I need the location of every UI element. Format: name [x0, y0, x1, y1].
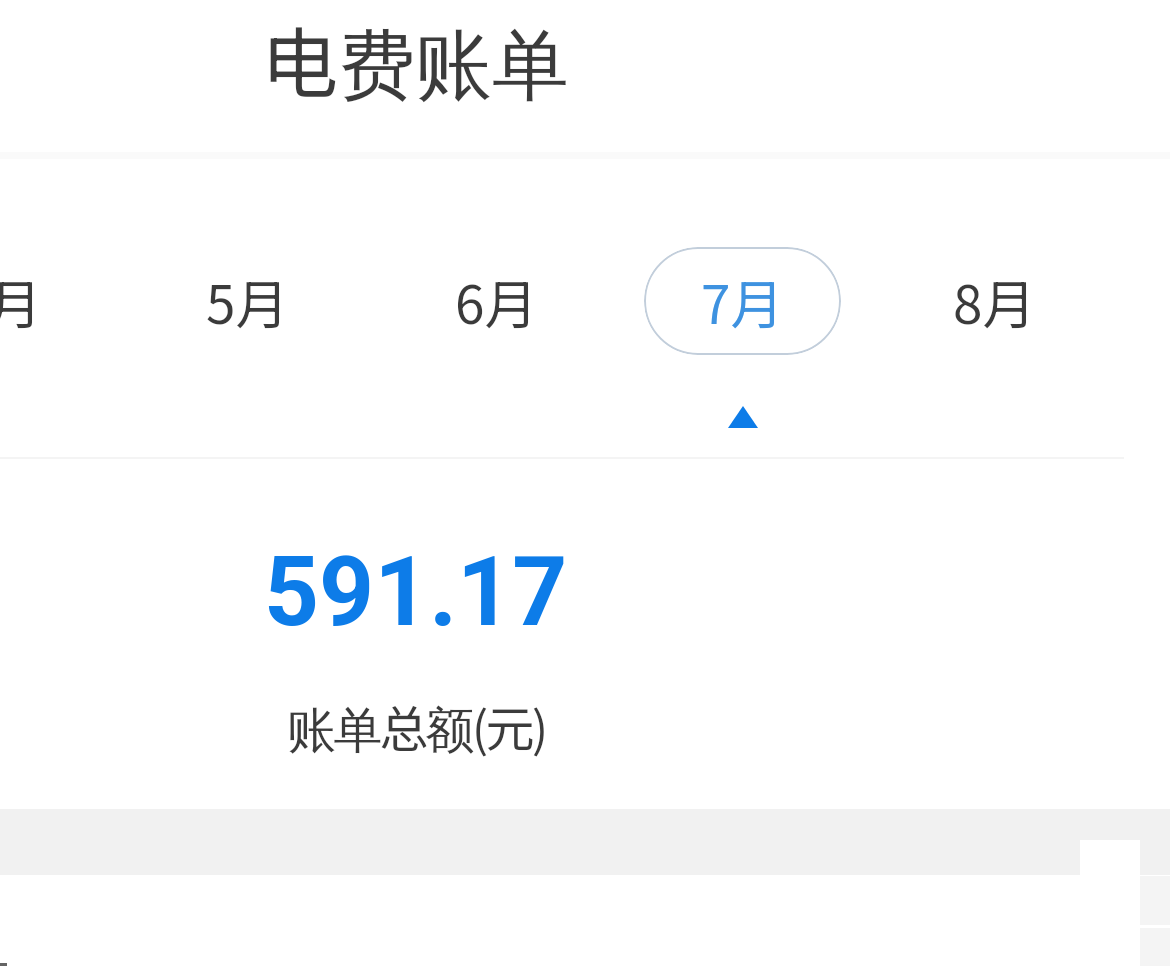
staticText: 5月 [206, 263, 289, 340]
button[interactable]: 8月 [896, 247, 1093, 355]
button[interactable]: 7月 [644, 247, 841, 355]
staticText: 账单总额(元) [287, 690, 546, 761]
staticText: 7月 [701, 263, 784, 340]
button[interactable]: 6月 [398, 247, 595, 355]
button[interactable]: 4月 [0, 247, 99, 355]
staticText: 6月 [455, 263, 538, 340]
staticText: 电费账单 [261, 3, 569, 115]
staticText: 4月 [0, 263, 42, 340]
staticText: 8月 [953, 263, 1036, 340]
button[interactable]: 5月 [149, 247, 346, 355]
other: Selected month indicator [728, 406, 758, 428]
staticText: 591.17 [264, 536, 568, 649]
